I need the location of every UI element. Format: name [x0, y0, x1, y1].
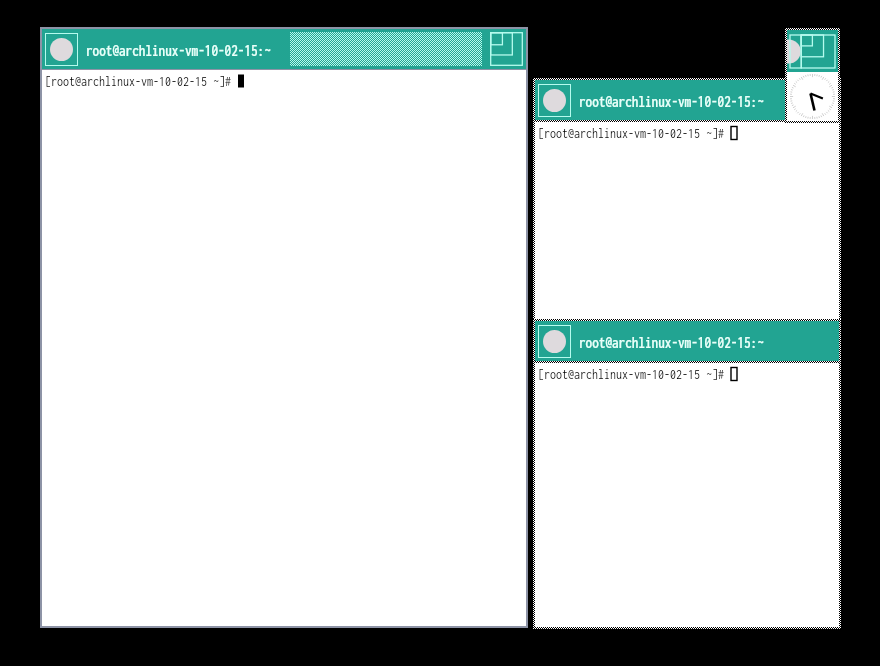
- button[interactable]: Clock window: [785, 28, 840, 123]
- staticText: [root@archlinux-vm-10-02-15 ~]#: [538, 125, 731, 141]
- button[interactable]: root@archlinux-vm-10-02-15:~: [533, 78, 841, 321]
- staticText: root@archlinux-vm-10-02-15:~: [579, 334, 764, 351]
- button[interactable]: Window layout: [490, 32, 523, 66]
- staticText: [root@archlinux-vm-10-02-15 ~]#: [45, 73, 238, 89]
- staticText: root@archlinux-vm-10-02-15:~: [579, 93, 764, 110]
- button[interactable]: root@archlinux-vm-10-02-15:~: [533, 319, 841, 629]
- staticText: root@archlinux-vm-10-02-15:~: [86, 42, 271, 59]
- button[interactable]: root@archlinux-vm-10-02-15:~: [40, 27, 528, 628]
- staticText: [root@archlinux-vm-10-02-15 ~]#: [538, 366, 731, 382]
